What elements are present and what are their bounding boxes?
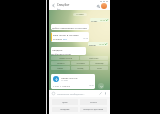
staticText: бот	[57, 8, 61, 11]
staticText: 17:14	[99, 43, 104, 46]
staticText: Оплата	[57, 62, 65, 65]
button[interactable]: Проценты доставки	[80, 107, 107, 112]
button[interactable]: Наши услуги	[51, 56, 79, 60]
button[interactable]: Продажи	[52, 107, 78, 112]
staticText: История	[76, 62, 85, 65]
button[interactable]: Назад	[71, 66, 89, 70]
staticText: Проценты доставки	[83, 108, 104, 111]
button[interactable]: меню	[88, 42, 108, 46]
staticText: Ваш логин в системе	[53, 33, 79, 36]
button[interactable]: Ваш логин в системе	[51, 32, 89, 42]
staticText: добро пожаловать в систему	[52, 26, 88, 29]
button[interactable]: Attach file	[99, 92, 102, 95]
staticText: Найдите	[52, 48, 63, 51]
button[interactable]: 12 мая	[73, 13, 87, 16]
staticText: Наши услуги	[59, 57, 72, 60]
button[interactable]: Прайс.xlsx.xls	[51, 74, 95, 89]
staticText: старт	[91, 19, 98, 22]
staticText: Спец бот	[57, 3, 70, 7]
staticText: 17:21	[89, 84, 94, 87]
button[interactable]: Стоп	[90, 66, 108, 70]
staticText: Прайс.xlsx.xls	[61, 76, 78, 79]
staticText: Услуги	[90, 101, 97, 104]
button[interactable]: Найдите	[51, 47, 86, 55]
staticText: меню	[89, 43, 96, 46]
staticText: 12 мая	[76, 13, 84, 16]
button[interactable]: Оплата	[51, 61, 70, 65]
button[interactable]: Search	[96, 4, 101, 9]
button[interactable]: Цены	[52, 99, 78, 105]
staticText: Стоп	[97, 67, 102, 70]
button[interactable]: Меню	[51, 66, 70, 70]
staticText: 11.2 КБ	[61, 79, 68, 82]
staticText: 17:21 11.05.24	[53, 84, 70, 87]
staticText: 17:13	[83, 37, 88, 40]
staticText: Цены	[62, 101, 68, 104]
button[interactable]: Record voice message	[104, 92, 107, 95]
button[interactable]: История	[71, 61, 89, 65]
staticText: тут	[63, 37, 67, 40]
staticText: выберите пункт	[52, 52, 72, 55]
staticText: Продажи	[60, 108, 70, 111]
staticText: Напишите сообщение...	[57, 92, 99, 95]
button[interactable]: Emoji	[52, 92, 55, 95]
button[interactable]: Мой счёт	[80, 56, 108, 60]
staticText: Ссылка	[53, 37, 63, 40]
button[interactable]: Open profile	[101, 3, 107, 9]
button[interactable]: Услуги	[80, 99, 107, 105]
button[interactable]: Back	[51, 3, 56, 8]
staticText: 17:12	[100, 19, 105, 22]
button[interactable]: Помощь	[90, 61, 108, 65]
staticText: Назад	[77, 67, 84, 70]
staticText: Помощь	[95, 62, 104, 65]
staticText: Мой счёт	[89, 57, 99, 60]
button[interactable]: Scroll to bottom	[98, 83, 104, 89]
button[interactable]: добро пожаловать в систему	[51, 24, 89, 30]
button[interactable]: старт	[90, 18, 109, 22]
staticText: Меню	[57, 67, 64, 70]
